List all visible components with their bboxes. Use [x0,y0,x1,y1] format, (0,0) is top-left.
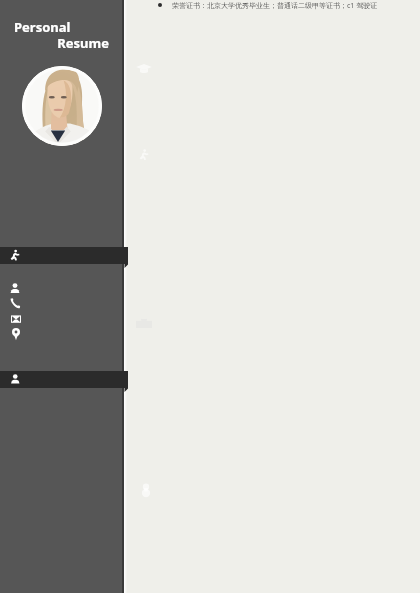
button[interactable]: Location [9,326,23,340]
staticText: 荣誉证书：北京大学优秀毕业生；普通话二级甲等证书；c1 驾驶证 [172,1,378,11]
staticText: Resume [0,34,109,52]
button[interactable]: Profile [0,371,128,393]
staticText: Personal [14,18,71,36]
button[interactable]: Skills [0,247,128,269]
button[interactable]: Phone [7,296,23,312]
button[interactable]: Profile photo [22,66,102,146]
button[interactable]: Email [8,312,24,328]
button[interactable]: Name [7,281,23,297]
